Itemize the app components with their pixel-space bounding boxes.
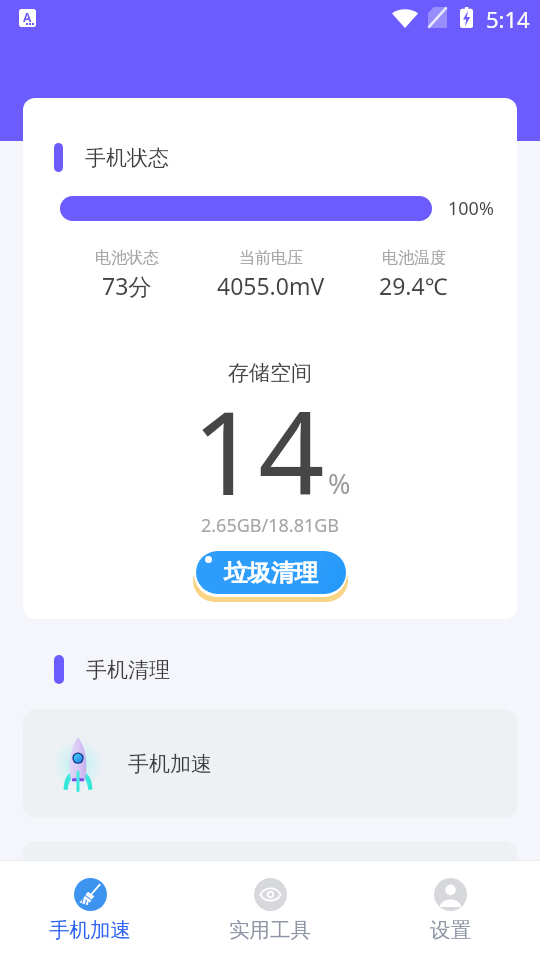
staticText: 垃圾清理	[224, 558, 318, 588]
staticText: 设置	[430, 917, 471, 943]
staticText: A	[23, 9, 32, 25]
staticText: 100%	[448, 196, 494, 221]
staticText: 29.4℃	[379, 270, 448, 301]
button[interactable]: 手机加速	[23, 709, 517, 818]
staticText: 实用工具	[229, 917, 311, 943]
other: 实用工具	[254, 878, 287, 911]
staticText: %	[328, 465, 351, 502]
staticText: 手机清理	[86, 657, 170, 683]
button[interactable]: 手机加速	[0, 861, 180, 960]
button[interactable]: 实用工具	[180, 861, 360, 960]
staticText: 手机加速	[49, 917, 131, 943]
button[interactable]	[23, 841, 517, 950]
staticText: 手机状态	[85, 145, 169, 171]
staticText: 存储空间	[228, 360, 312, 386]
other: 手机加速	[74, 878, 107, 911]
staticText: 4055.0mV	[217, 270, 325, 301]
staticText: 5:14	[486, 4, 530, 34]
button[interactable]: 设置	[360, 861, 540, 960]
staticText: 2.65GB/18.81GB	[201, 513, 340, 538]
button[interactable]: 垃圾清理	[193, 551, 348, 602]
other: 设置	[434, 878, 467, 911]
staticText: 手机加速	[128, 751, 212, 777]
staticText: 73分	[102, 270, 152, 301]
staticText: 电池温度	[382, 248, 446, 268]
staticText: 当前电压	[239, 248, 303, 268]
staticText: 14	[192, 371, 325, 529]
staticText: 电池状态	[95, 248, 159, 268]
